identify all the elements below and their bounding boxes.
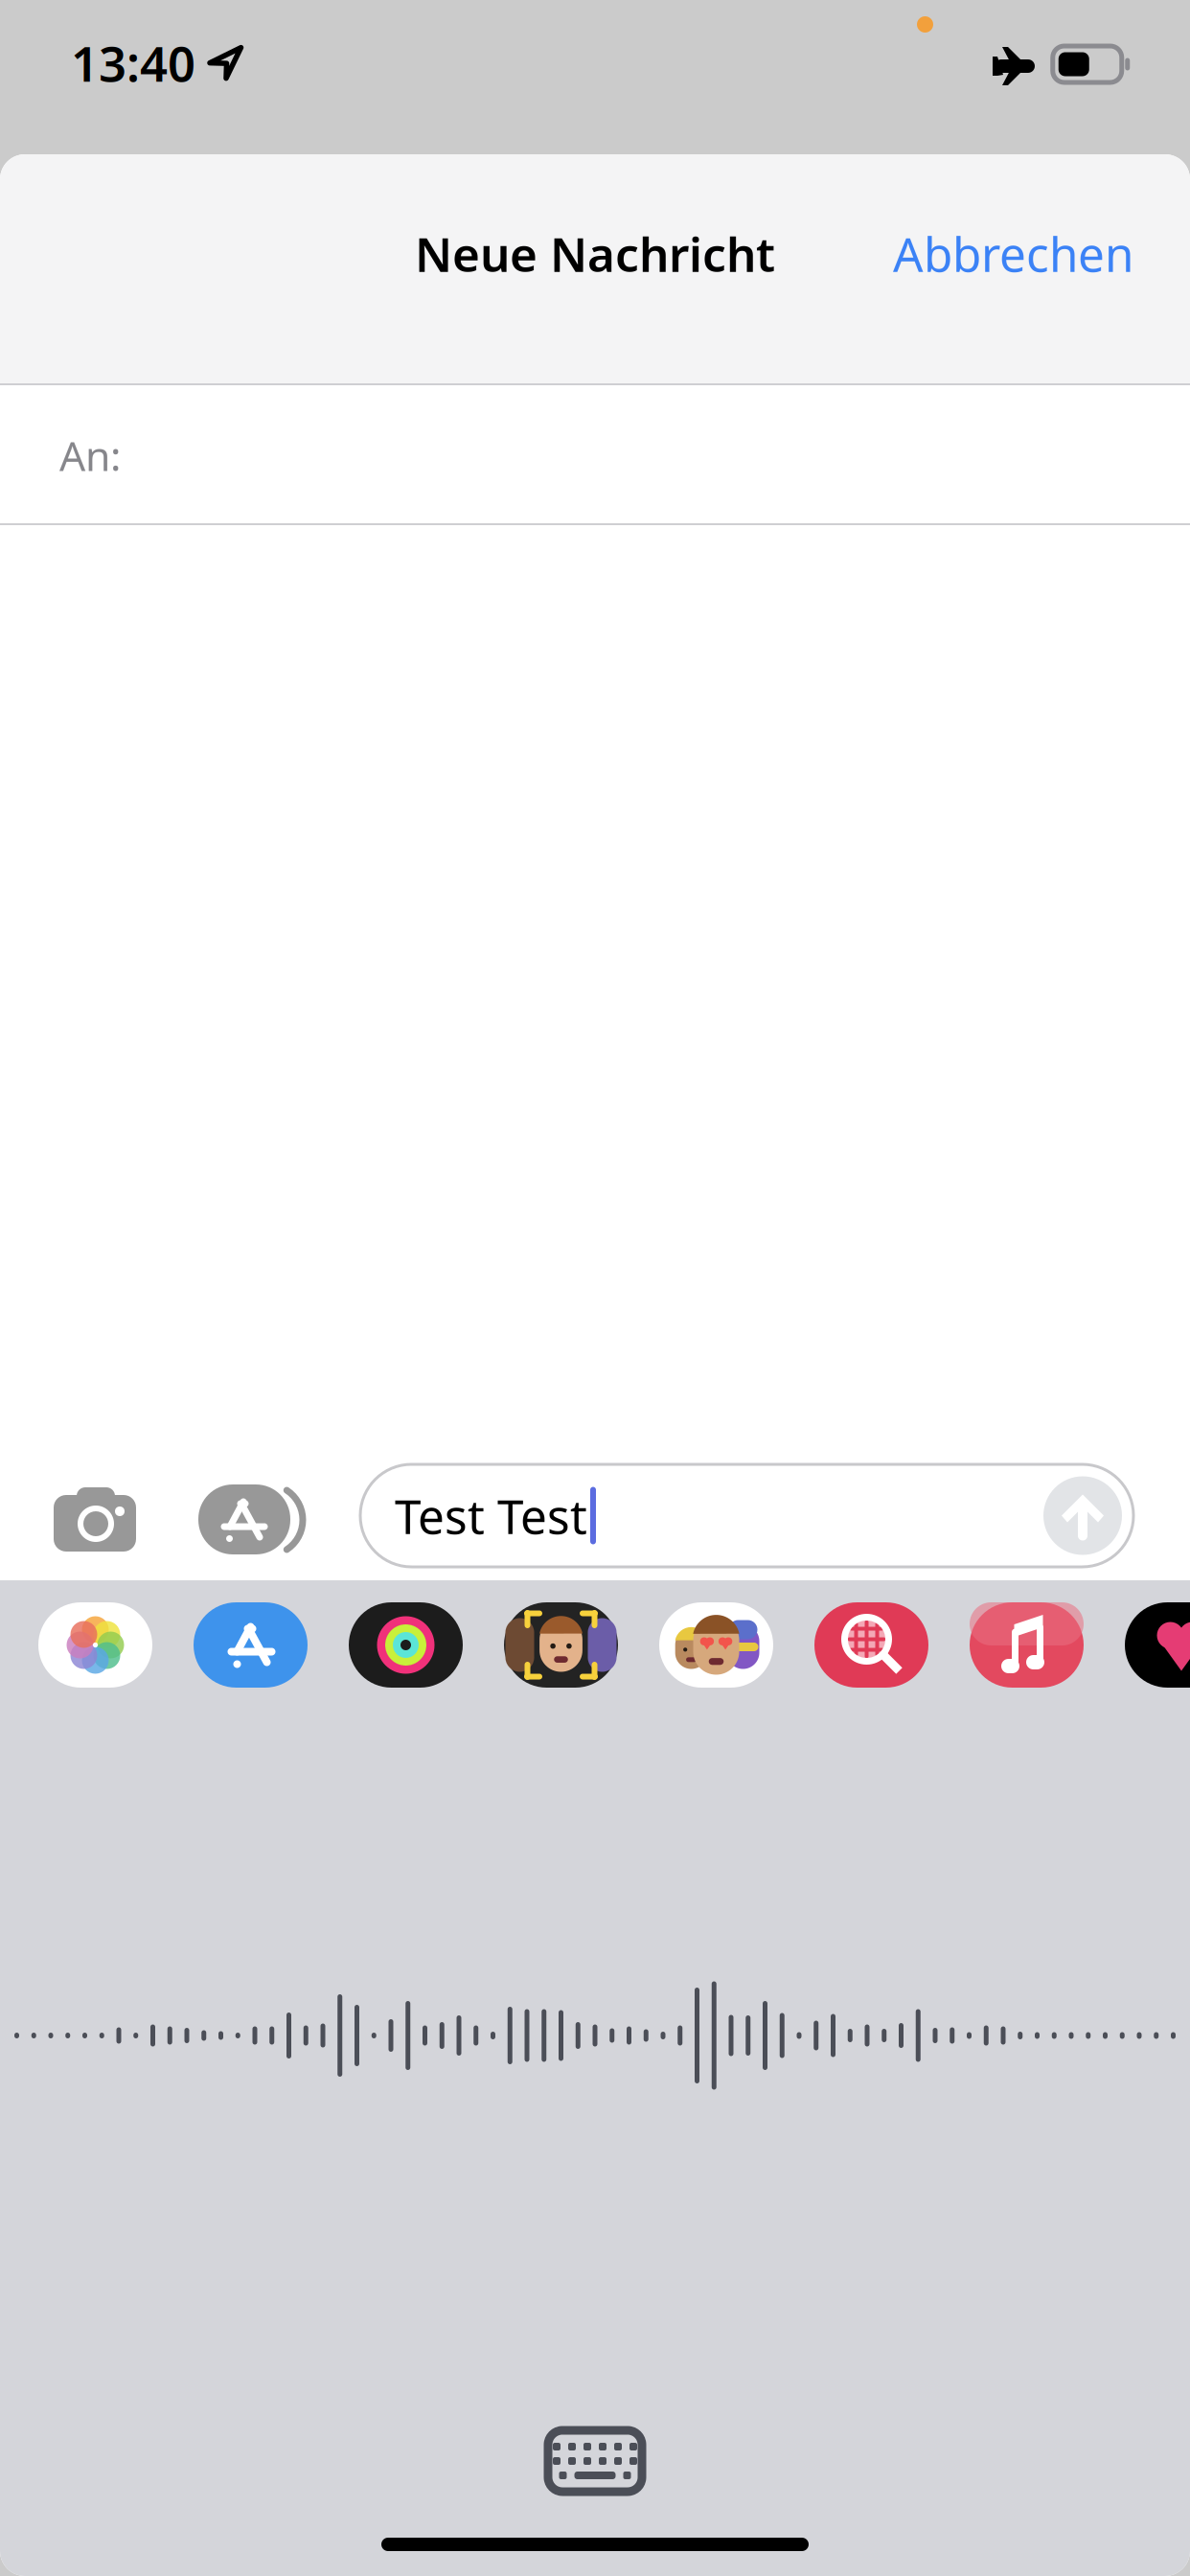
- button[interactable]: Musik: [970, 1602, 1084, 1688]
- button[interactable]: Memoji-Sticker: [659, 1602, 773, 1688]
- staticText: Test Test: [395, 1484, 587, 1547]
- staticText: Abbrechen: [893, 222, 1133, 285]
- button[interactable]: Bilder: [814, 1602, 928, 1688]
- button[interactable]: App Store: [194, 1602, 308, 1688]
- button[interactable]: Tastatur: [548, 2430, 642, 2492]
- button[interactable]: Fotos: [38, 1602, 152, 1688]
- staticText: Neue Nachricht: [415, 222, 775, 285]
- button[interactable]: Memoji: [504, 1602, 618, 1688]
- button[interactable]: Apps: [167, 1464, 309, 1555]
- button[interactable]: Digital Touch: [1125, 1602, 1190, 1688]
- button[interactable]: Fitness: [349, 1602, 463, 1688]
- staticText: 13:40: [71, 31, 195, 95]
- button[interactable]: Kamera: [0, 1464, 167, 1548]
- staticText: An:: [59, 428, 121, 482]
- button[interactable]: Abbrechen: [855, 199, 1190, 308]
- button[interactable]: Senden: [1043, 1476, 1122, 1555]
